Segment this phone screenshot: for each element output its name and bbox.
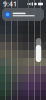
button[interactable]: Notification: [2, 8, 44, 21]
staticText: 9:41: [3, 0, 17, 8]
